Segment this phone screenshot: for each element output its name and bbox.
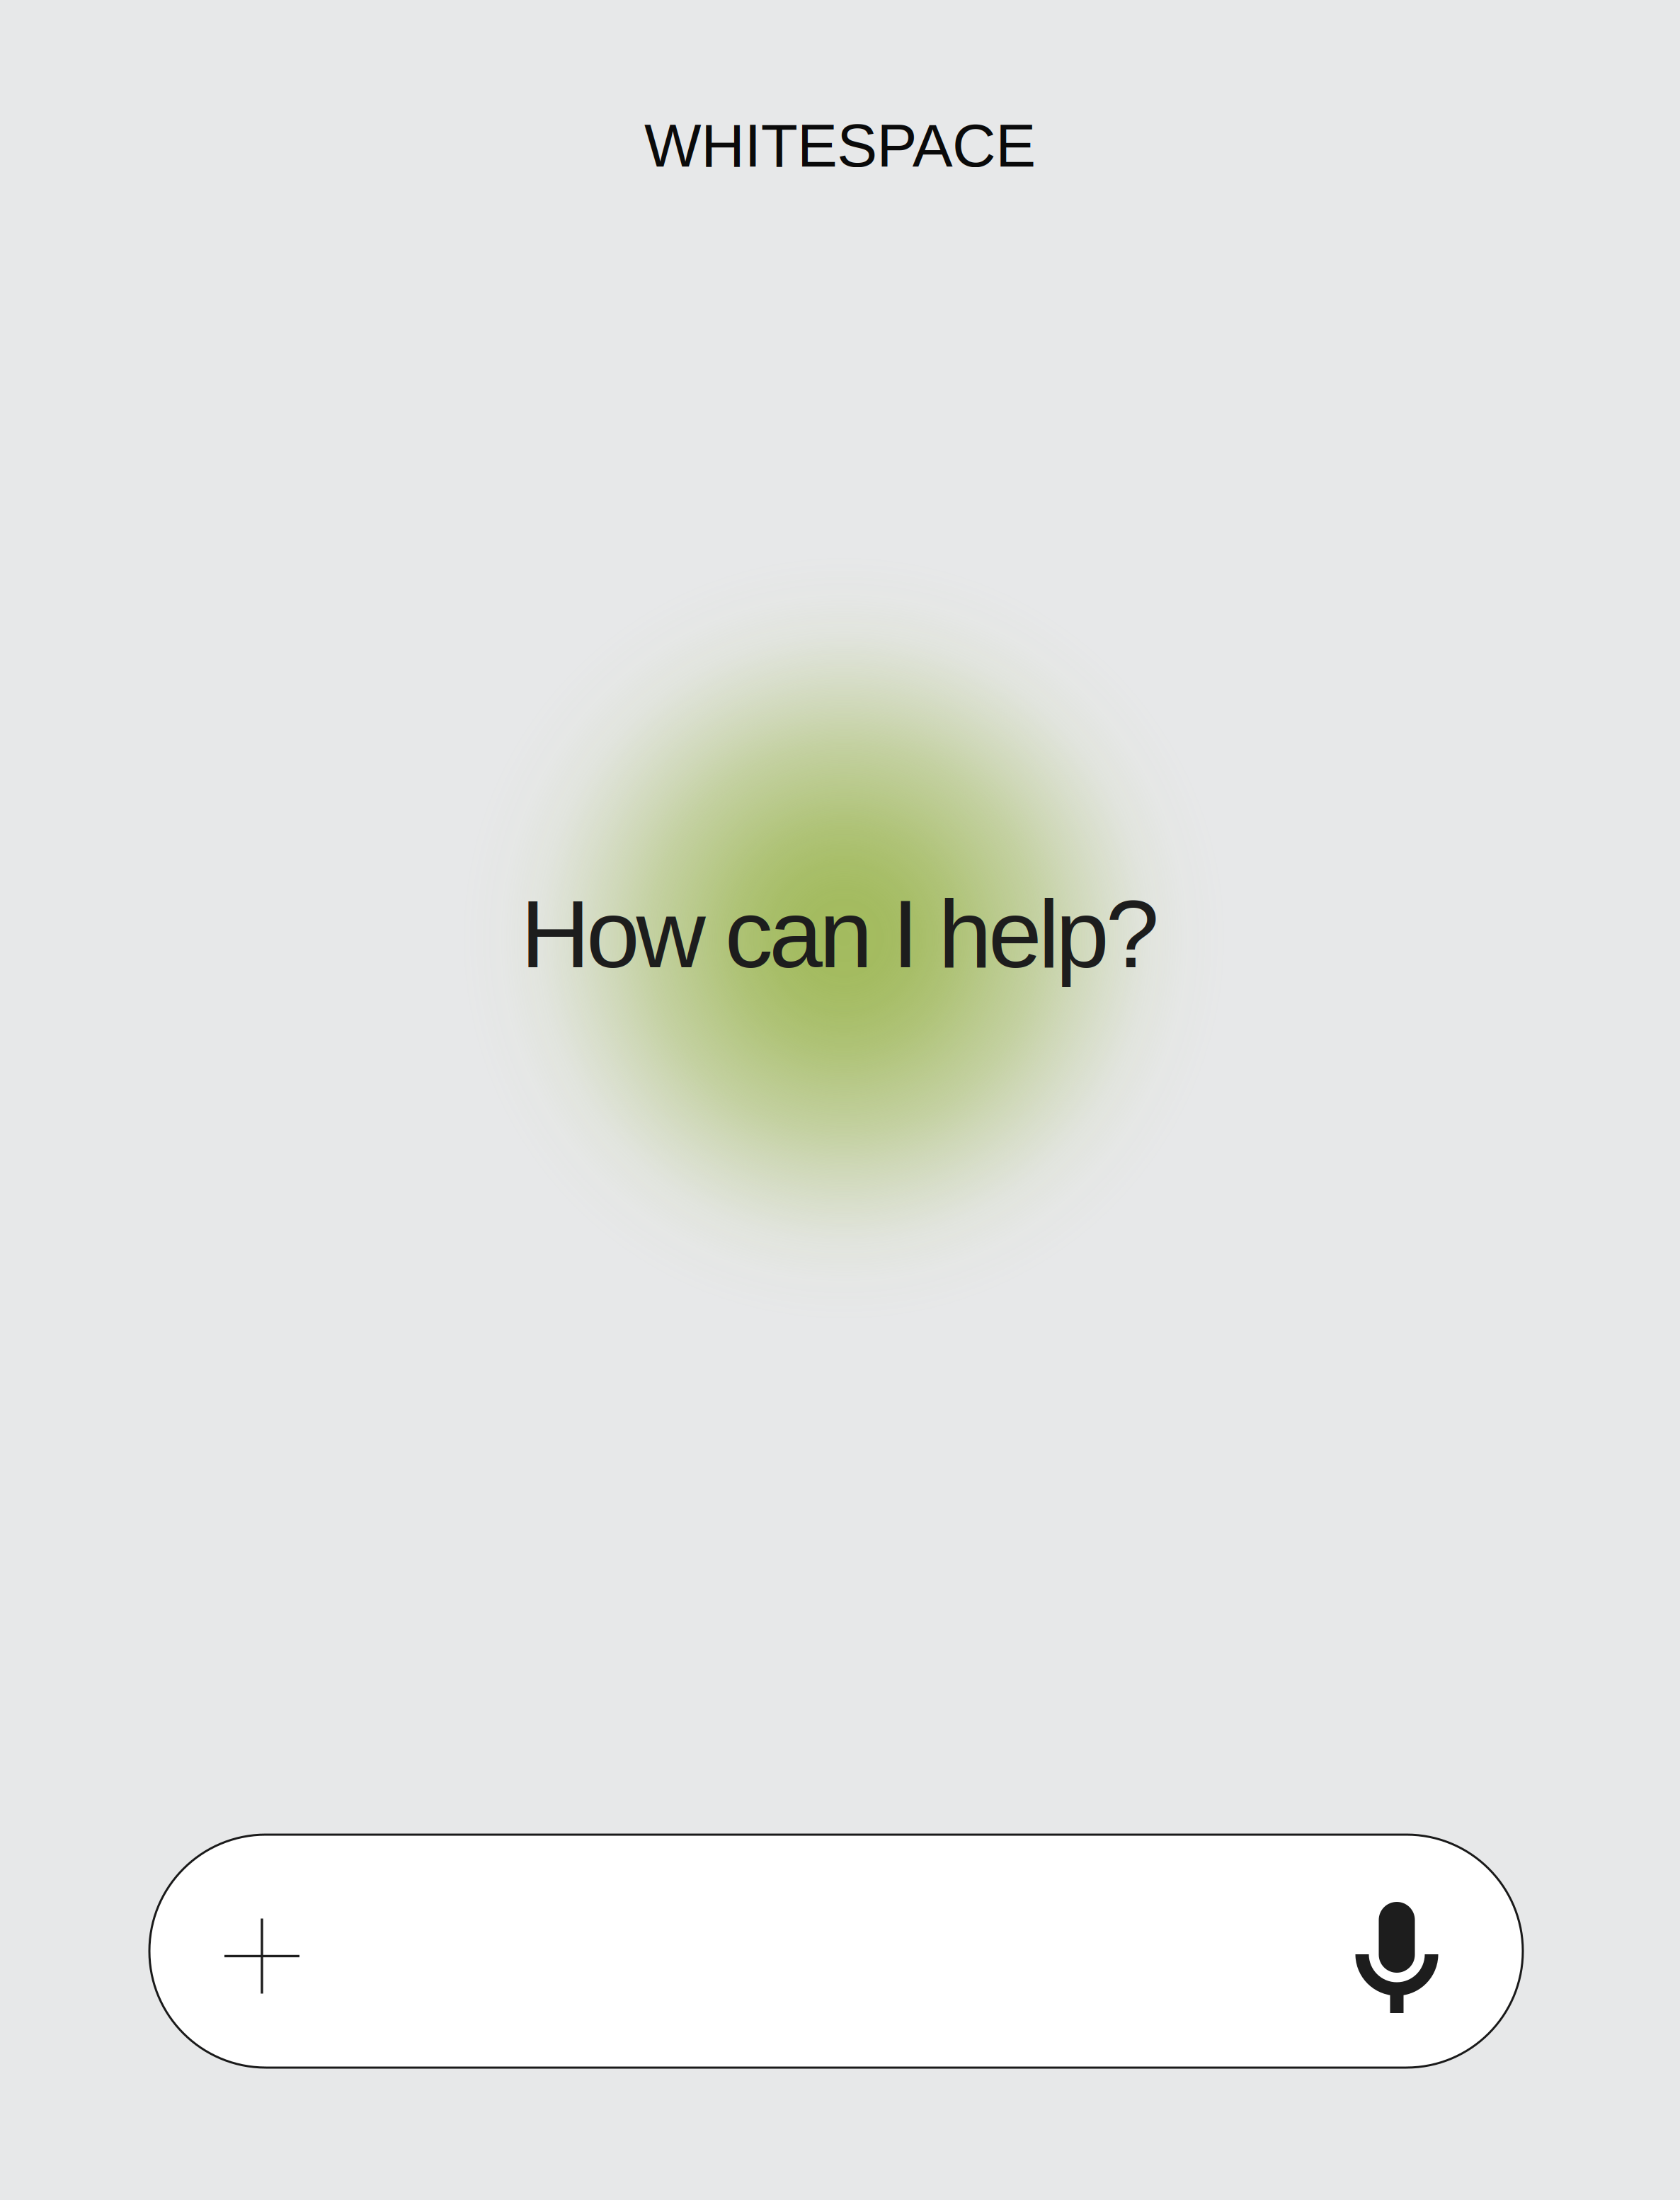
button[interactable]: Add attachment — [149, 1840, 375, 2073]
staticText: How can I help? — [521, 880, 1159, 988]
button[interactable]: Dictate — [1284, 1841, 1510, 2074]
staticText: WHITESPACE — [644, 112, 1036, 179]
